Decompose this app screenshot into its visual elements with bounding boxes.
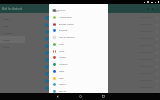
button[interactable]: Drive [49, 41, 108, 48]
button[interactable]: Email subject [25, 49, 160, 56]
staticText: Trash [3, 45, 10, 48]
button[interactable]: Back [54, 93, 61, 100]
staticText: Barcode Scanner [59, 23, 74, 26]
staticText: Share [52, 9, 60, 13]
staticText: Email subject [139, 37, 153, 40]
staticText: Email subject [139, 72, 153, 75]
staticText: Android Beam [59, 16, 72, 19]
staticText: Email subject [139, 86, 153, 89]
staticText: Save to... [59, 83, 67, 86]
staticText: Email subject [139, 30, 153, 33]
staticText: Send to... [59, 90, 68, 93]
staticText: Email subject [139, 23, 153, 26]
button[interactable]: Google+ [49, 54, 108, 61]
staticText: Email subject [139, 79, 153, 82]
button[interactable]: Save to... [49, 81, 108, 88]
staticText: Inbox [59, 70, 65, 73]
button[interactable]: Keep [49, 75, 108, 82]
staticText: Inbox [3, 17, 10, 20]
button[interactable]: Email subject [25, 91, 160, 98]
button[interactable]: Gmail [49, 48, 108, 55]
staticText: Add to... [59, 9, 67, 12]
button[interactable]: Email subject [25, 28, 160, 35]
staticText: Hangouts [59, 63, 68, 66]
button[interactable]: Barcode Scanner [49, 21, 108, 28]
button[interactable]: Email subject [25, 84, 160, 91]
staticText: Gmail [59, 50, 65, 53]
button[interactable]: Email subject [25, 35, 160, 42]
button[interactable]: Email subject [25, 42, 160, 49]
button[interactable]: Send to... [49, 88, 108, 93]
button[interactable]: Add to... [49, 7, 108, 14]
staticText: Sent [3, 24, 9, 27]
button[interactable]: Email subject [25, 77, 160, 84]
staticText: Drafts [3, 38, 11, 41]
button[interactable]: Copy to clipboard [49, 34, 108, 41]
button[interactable]: Recent apps [100, 93, 107, 100]
button[interactable]: Email subject [25, 63, 160, 70]
staticText: Email subject [139, 58, 153, 61]
staticText: Email subject [139, 44, 153, 47]
staticText: Email subject [139, 51, 153, 54]
staticText: Drive [59, 43, 64, 46]
button[interactable]: Inbox [49, 68, 108, 75]
button[interactable]: Android Beam [49, 14, 108, 21]
staticText: Copy to clipboard [59, 36, 75, 39]
button[interactable]: Email subject [25, 21, 160, 28]
button[interactable]: Bluetooth [49, 27, 108, 34]
staticText: Email subject [139, 65, 153, 68]
button[interactable]: Home [77, 93, 84, 100]
button[interactable]: Email subject [25, 70, 160, 77]
staticText: All Items [3, 31, 14, 34]
staticText: Keep [59, 77, 64, 80]
button[interactable]: Hangouts [49, 61, 108, 68]
staticText: Mail for Android [2, 7, 23, 11]
button[interactable]: Drafts [0, 36, 25, 43]
staticText: Email subject [139, 16, 153, 19]
staticText: Google+ [59, 56, 67, 59]
button[interactable]: Email subject [25, 56, 160, 63]
button[interactable]: Email subject [25, 14, 160, 21]
staticText: Bluetooth [59, 29, 68, 32]
